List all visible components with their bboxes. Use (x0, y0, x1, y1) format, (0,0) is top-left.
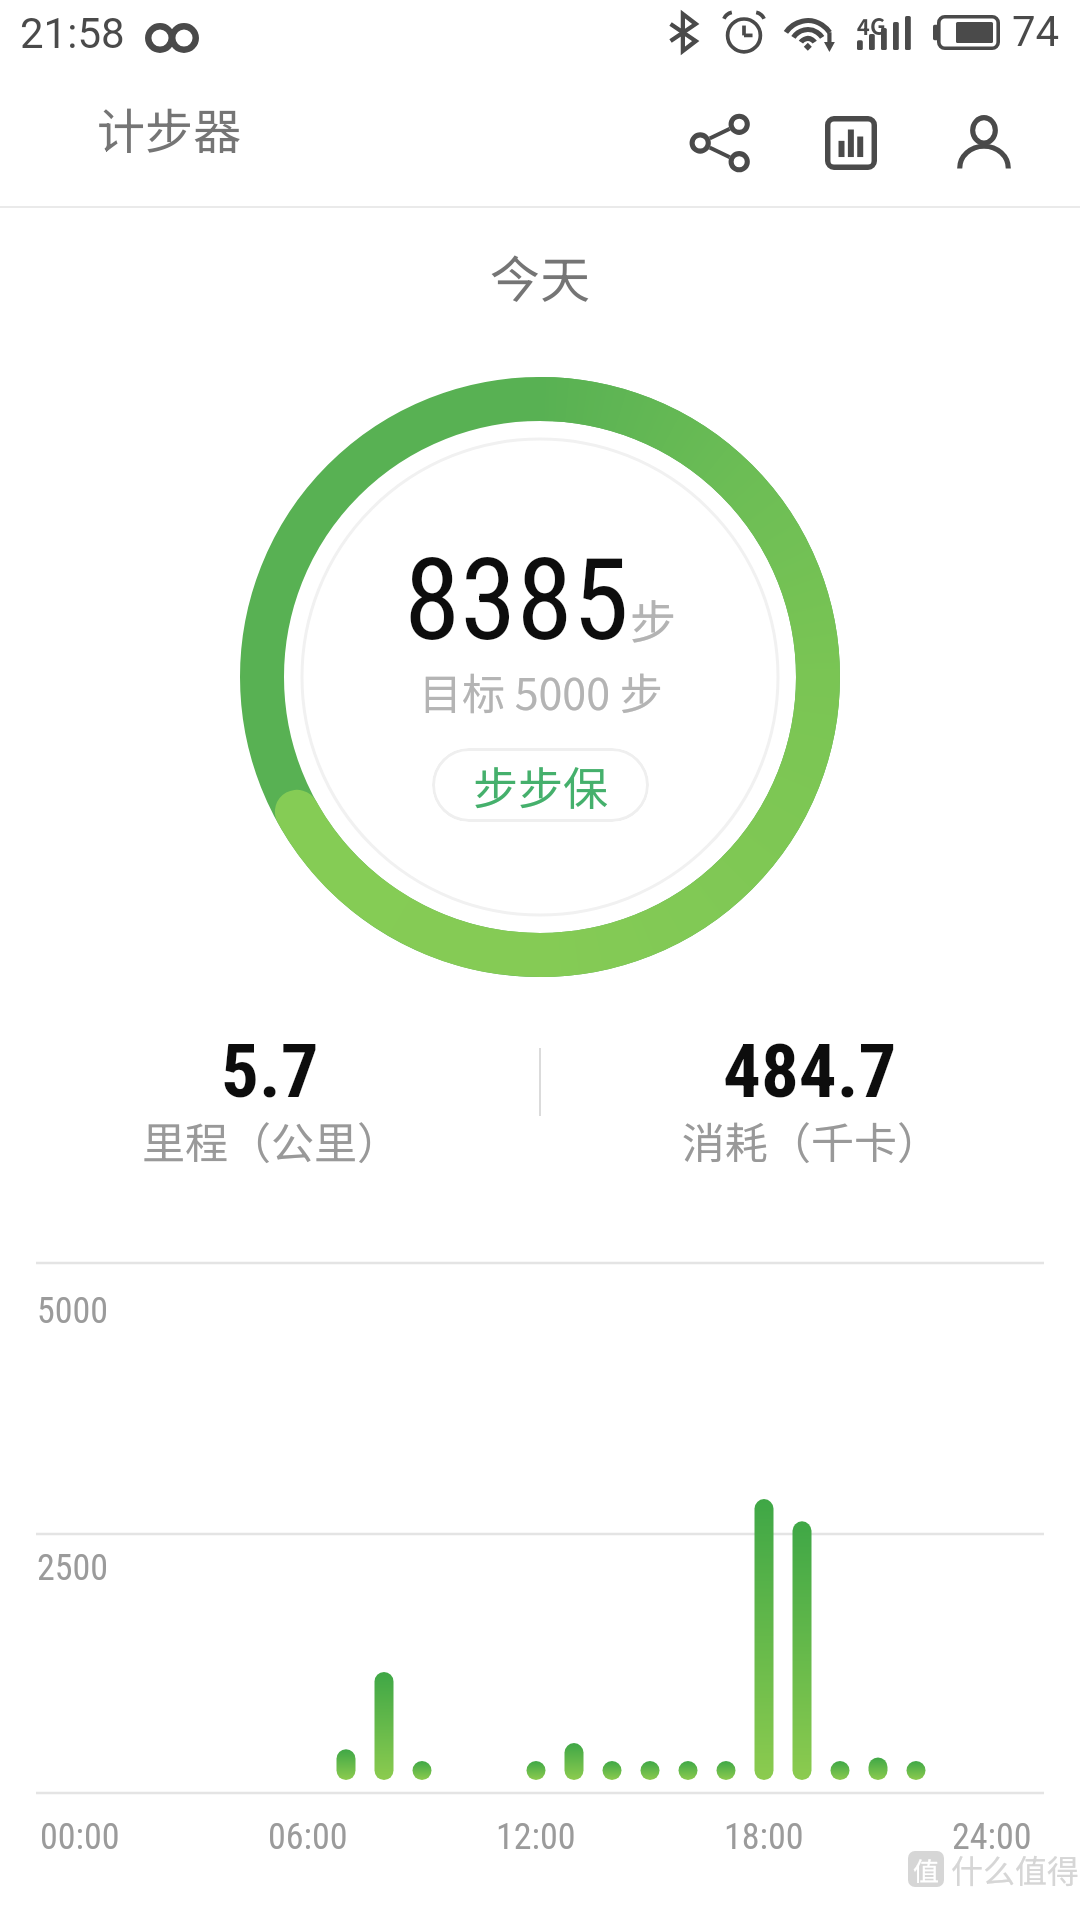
staticText: 5.7 (221, 1027, 319, 1115)
button[interactable]: Statistics (792, 80, 910, 206)
staticText: 值 (913, 1851, 940, 1887)
staticText: 8385 (404, 533, 630, 667)
staticText: 06:00 (268, 1816, 348, 1858)
staticText: 00:00 (40, 1816, 120, 1858)
staticText: 计步器 (97, 93, 242, 163)
staticText: 里程（公里） (142, 1109, 400, 1171)
staticText: 18:00 (724, 1816, 804, 1858)
staticText: 24:00 (952, 1816, 1032, 1858)
staticText: 步 (630, 586, 676, 653)
staticText: 什么值得买 (951, 1846, 1080, 1892)
staticText: 21:58 (20, 9, 125, 58)
staticText: 484.7 (723, 1027, 897, 1115)
staticText: 12:00 (496, 1816, 576, 1858)
staticText: 目标 5000 步 (419, 660, 663, 722)
button[interactable]: 步步保 (432, 748, 649, 822)
staticText: 5000 (37, 1290, 109, 1332)
staticText: 消耗（千卡） (682, 1109, 940, 1171)
staticText: 2500 (37, 1547, 109, 1589)
button[interactable]: Profile (925, 80, 1043, 206)
staticText: 74 (1012, 7, 1060, 56)
button[interactable]: Share (661, 80, 779, 206)
staticText: 步步保 (473, 753, 609, 818)
staticText: 今天 (490, 240, 590, 312)
staticText: 4G (857, 9, 886, 41)
